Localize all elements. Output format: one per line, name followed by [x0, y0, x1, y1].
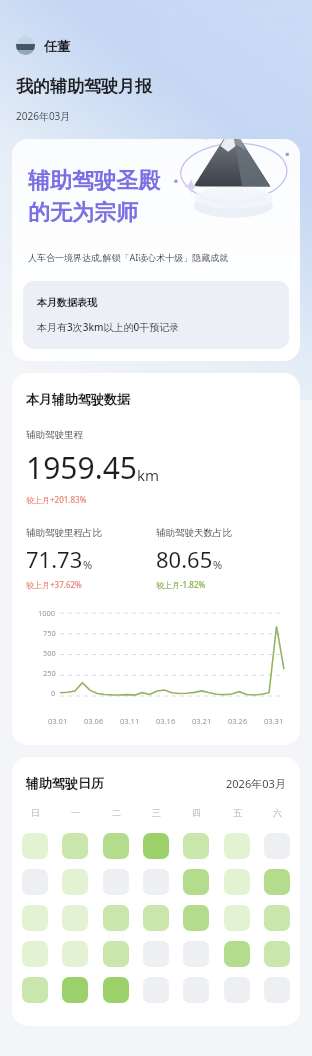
staticText: 五 — [233, 807, 242, 818]
staticText: 较上月-1.82% — [156, 579, 206, 590]
button[interactable] — [264, 977, 290, 1003]
button[interactable] — [22, 869, 48, 895]
staticText: 本月有3次3km以上的0干预记录 — [37, 320, 180, 334]
button[interactable] — [224, 941, 250, 967]
button[interactable] — [264, 833, 290, 859]
staticText: 250 — [43, 668, 56, 678]
staticText: 一 — [71, 807, 80, 818]
button[interactable]: 辅助驾驶日历 — [12, 757, 300, 1026]
staticText: 03.06 — [84, 716, 104, 726]
button[interactable] — [22, 833, 48, 859]
staticText: 四 — [192, 807, 201, 818]
button[interactable] — [143, 833, 169, 859]
button[interactable] — [264, 941, 290, 967]
button[interactable]: 辅助驾驶圣殿 — [12, 139, 300, 361]
staticText: 03.26 — [228, 716, 248, 726]
staticText: 较上月+37.62% — [26, 579, 82, 590]
button[interactable] — [143, 905, 169, 931]
button[interactable] — [62, 833, 88, 859]
other: Profile avatar — [16, 36, 35, 55]
button[interactable] — [103, 833, 129, 859]
staticText: 辅助驾驶日历 — [26, 775, 104, 791]
button[interactable] — [22, 941, 48, 967]
button[interactable] — [224, 833, 250, 859]
staticText: 三 — [152, 807, 161, 818]
staticText: 03.11 — [120, 716, 140, 726]
button[interactable] — [143, 977, 169, 1003]
staticText: 03.21 — [192, 716, 212, 726]
button[interactable] — [183, 977, 209, 1003]
button[interactable] — [183, 905, 209, 931]
staticText: 辅助驾驶圣殿 — [28, 167, 160, 195]
staticText: 辅助驾驶天数占比 — [156, 527, 232, 539]
button[interactable] — [143, 941, 169, 967]
staticText: 0 — [51, 688, 56, 698]
staticText: 03.01 — [48, 716, 68, 726]
staticText: km — [137, 465, 160, 485]
button[interactable] — [22, 977, 48, 1003]
button[interactable] — [22, 905, 48, 931]
staticText: 750 — [43, 628, 56, 638]
staticText: 我的辅助驾驶月报 — [16, 76, 152, 97]
staticText: % — [213, 557, 223, 572]
staticText: 的无为宗师 — [28, 199, 138, 227]
staticText: 80.65 — [156, 544, 213, 574]
button[interactable] — [224, 869, 250, 895]
staticText: 日 — [31, 807, 40, 818]
button[interactable] — [62, 977, 88, 1003]
staticText: 本月数据表现 — [37, 296, 97, 309]
staticText: 1000 — [38, 608, 56, 618]
button[interactable] — [103, 977, 129, 1003]
button[interactable] — [264, 869, 290, 895]
staticText: 辅助驾驶里程占比 — [26, 527, 102, 539]
staticText: 71.73 — [26, 544, 83, 574]
staticText: % — [83, 557, 93, 572]
button[interactable]: Profile avatar — [16, 36, 70, 55]
button[interactable] — [62, 941, 88, 967]
button[interactable]: 本月数据表现 — [23, 281, 289, 349]
button[interactable] — [103, 869, 129, 895]
button[interactable]: 本月辅助驾驶数据 — [12, 373, 300, 745]
button[interactable] — [224, 977, 250, 1003]
button[interactable] — [264, 905, 290, 931]
button[interactable] — [103, 941, 129, 967]
staticText: 二 — [112, 807, 121, 818]
button[interactable] — [103, 905, 129, 931]
staticText: 1959.45 — [26, 447, 137, 488]
staticText: 2026年03月 — [16, 109, 71, 123]
button[interactable] — [183, 941, 209, 967]
staticText: 本月辅助驾驶数据 — [26, 391, 130, 407]
staticText: 人车合一境界达成,解锁「AI读心术十级」隐藏成就 — [28, 251, 229, 263]
button[interactable] — [224, 905, 250, 931]
staticText: 较上月+201.83% — [26, 494, 87, 505]
button[interactable] — [183, 833, 209, 859]
button[interactable] — [62, 905, 88, 931]
staticText: 2026年03月 — [226, 776, 286, 791]
staticText: 03.16 — [156, 716, 176, 726]
staticText: 六 — [273, 807, 282, 818]
staticText: 任董 — [44, 38, 70, 54]
button[interactable] — [183, 869, 209, 895]
staticText: 03.31 — [264, 716, 284, 726]
staticText: 辅助驾驶里程 — [26, 429, 83, 441]
button[interactable] — [62, 869, 88, 895]
staticText: 500 — [43, 648, 56, 658]
button[interactable] — [143, 869, 169, 895]
